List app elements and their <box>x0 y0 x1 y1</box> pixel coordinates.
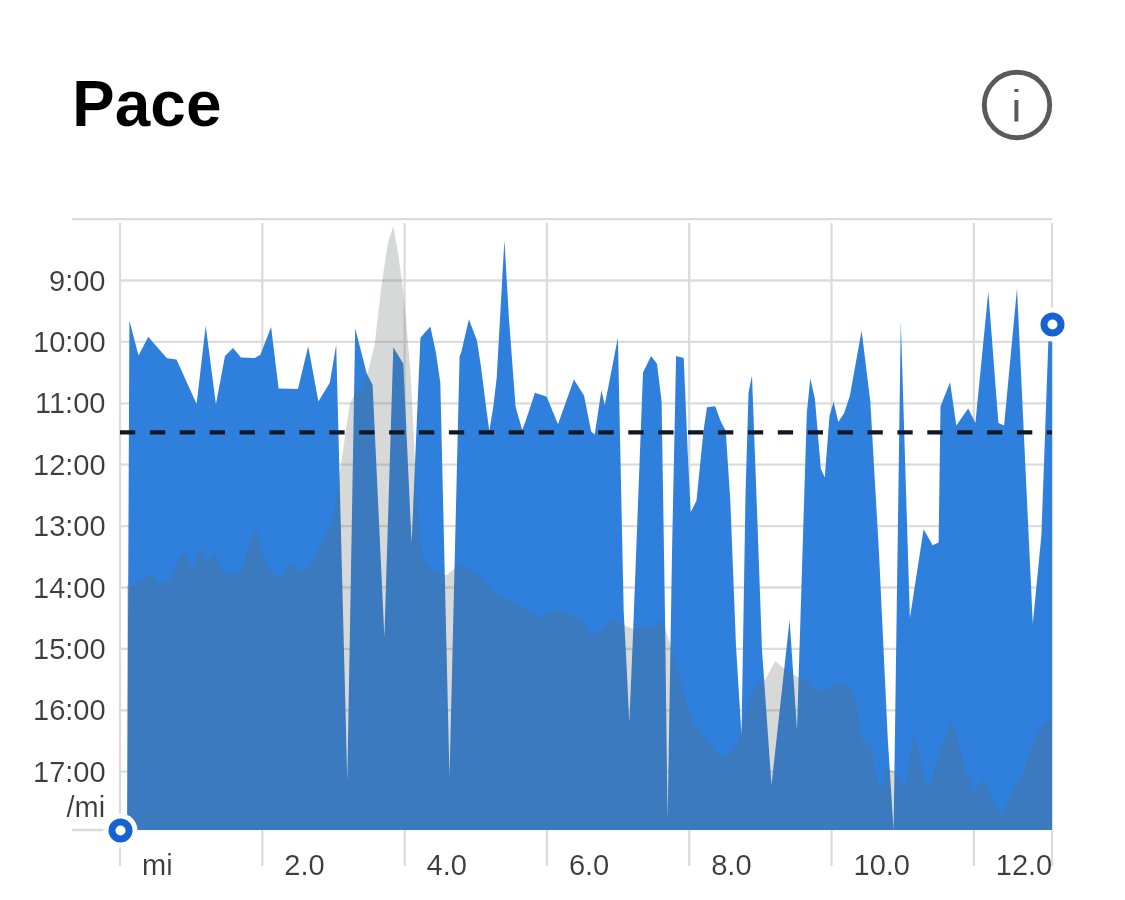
button[interactable]: Info <box>963 51 1071 159</box>
